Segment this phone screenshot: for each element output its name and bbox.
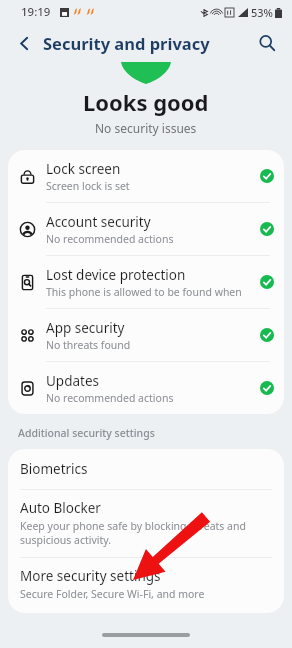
staticText: Looks good (83, 87, 209, 117)
button[interactable]: Lost device protection (8, 256, 284, 308)
staticText: This phone is allowed to be found when l… (46, 285, 250, 299)
staticText: Lock screen (46, 160, 121, 178)
staticText: Lost device protection (46, 266, 186, 284)
button[interactable]: Updates (8, 362, 284, 414)
staticText: No recommended actions (46, 232, 174, 246)
staticText: Auto Blocker (20, 499, 101, 517)
button[interactable]: Auto Blocker (8, 490, 284, 557)
staticText: Account security (46, 213, 151, 231)
button[interactable]: More security settings (8, 558, 284, 613)
staticText: Screen lock is set (46, 179, 130, 193)
staticText: 53% (251, 5, 273, 20)
button[interactable]: Account security (8, 203, 284, 255)
staticText: No recommended actions (46, 391, 174, 405)
staticText: suspicious activity. (20, 533, 112, 547)
button[interactable]: Navigate up (8, 27, 40, 59)
staticText: Additional security settings (18, 426, 155, 440)
staticText: Secure Folder, Secure Wi-Fi, and more (20, 587, 205, 601)
staticText: Security and privacy (43, 32, 210, 54)
staticText: No threats found (46, 338, 131, 352)
staticText: App security (46, 319, 125, 337)
staticText: No security issues (95, 120, 197, 136)
button[interactable]: Lock screen (8, 150, 284, 202)
staticText: Biometrics (20, 460, 88, 478)
staticText: Keep your phone safe by blocking threats… (20, 519, 272, 533)
staticText: More security settings (20, 567, 161, 585)
staticText: 19:19 (21, 4, 51, 20)
button[interactable]: Biometrics (8, 449, 284, 489)
staticText: Updates (46, 372, 100, 390)
button[interactable]: Search (250, 26, 284, 60)
button[interactable]: App security (8, 309, 284, 361)
